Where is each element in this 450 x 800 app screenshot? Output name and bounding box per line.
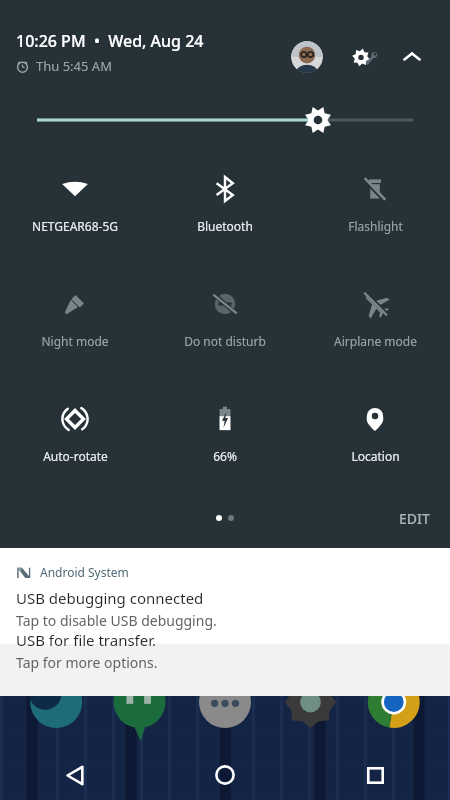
staticText: Flashlight	[348, 218, 403, 234]
staticText: 10:26 PM • Wed, Aug 24	[16, 30, 204, 52]
staticText: Bluetooth	[197, 218, 253, 234]
staticText: USB debugging connected	[16, 588, 204, 608]
staticText: Thu 5:45 AM	[36, 57, 112, 75]
staticText: EDIT	[399, 509, 430, 528]
button[interactable]: Collapse	[396, 41, 428, 73]
button[interactable]: Bluetooth	[150, 152, 300, 267]
button[interactable]: Do not disturb	[150, 267, 300, 382]
button[interactable]: Home	[150, 750, 300, 800]
staticText: USB for file transfer.	[16, 630, 157, 650]
button[interactable]: Settings	[347, 41, 381, 75]
button[interactable]: NETGEAR68-5G	[0, 152, 150, 267]
button[interactable]: Airplane mode	[300, 267, 450, 382]
button[interactable]: EDIT	[393, 505, 436, 532]
button[interactable]: Android System	[0, 548, 450, 644]
button[interactable]: Night mode	[0, 267, 150, 382]
button[interactable]: Back	[0, 750, 150, 800]
staticText: Do not disturb	[184, 333, 266, 349]
button[interactable]: Location	[300, 382, 450, 497]
button[interactable]: Recents	[300, 750, 450, 800]
button[interactable]: Flashlight	[300, 152, 450, 267]
button[interactable]: Auto-rotate	[0, 382, 150, 497]
button[interactable]: Brightness	[0, 98, 450, 142]
button[interactable]: User account	[291, 41, 323, 73]
staticText: Tap for more options.	[16, 653, 158, 672]
button[interactable]: 66%	[150, 382, 300, 497]
staticText: 66%	[213, 448, 237, 464]
staticText: Night mode	[41, 333, 109, 349]
staticText: NETGEAR68-5G	[32, 218, 118, 234]
staticText: Android System	[40, 564, 129, 580]
staticText: Auto-rotate	[43, 448, 108, 464]
button[interactable]: USB for file transfer.	[0, 644, 450, 696]
staticText: Location	[351, 448, 400, 464]
staticText: Tap to disable USB debugging.	[16, 611, 217, 630]
staticText: Airplane mode	[334, 333, 417, 349]
